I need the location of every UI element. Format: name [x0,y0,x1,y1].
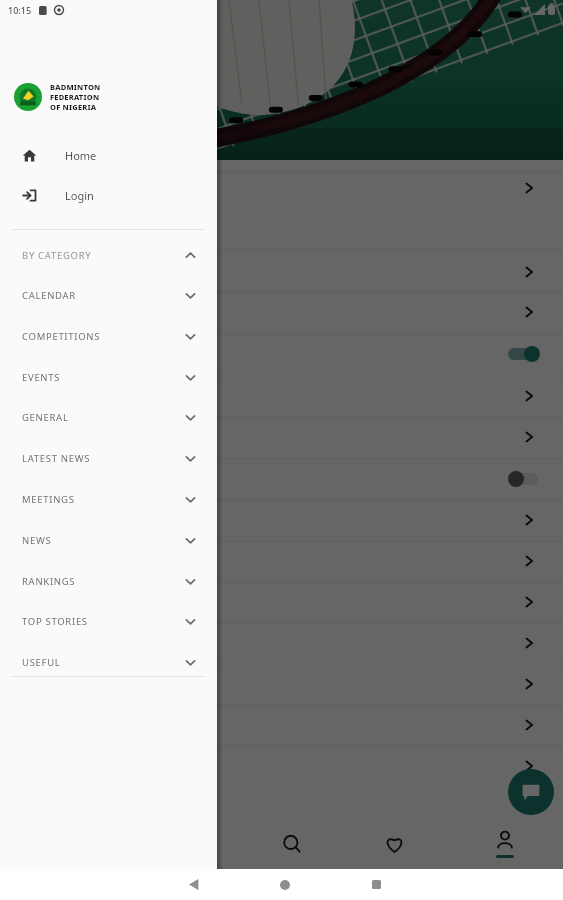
button[interactable]: Open [522,265,536,279]
button[interactable]: Open [522,759,536,773]
staticText: Login [65,188,94,203]
button[interactable]: BADMINTON [14,82,101,112]
button[interactable]: Toggle on [508,345,542,363]
button[interactable]: Profile [477,819,533,869]
button[interactable]: TOP STORIES [0,606,217,636]
button[interactable]: Open [522,636,536,650]
button[interactable]: CALENDAR [0,280,217,310]
staticText: RANKINGS [22,575,76,588]
staticText: MEETINGS [22,493,75,506]
staticText: BY CATEGORY [22,249,92,262]
staticText: CALENDAR [22,289,76,302]
button[interactable]: COMPETITIONS [0,321,217,351]
button[interactable]: GENERAL [0,402,217,432]
staticText: LATEST NEWS [22,452,91,465]
button[interactable]: Open [522,389,536,403]
button[interactable]: EVENTS [0,362,217,392]
button[interactable]: Open [522,595,536,609]
button[interactable]: Search [264,819,320,869]
button[interactable]: MEETINGS [0,484,217,514]
button[interactable]: Open [522,513,536,527]
button[interactable]: RANKINGS [0,566,217,596]
button[interactable]: USEFUL [0,647,217,677]
staticText: OF NIGERIA [50,102,97,112]
staticText: BADMINTON [50,82,101,92]
button[interactable]: LATEST NEWS [0,443,217,473]
staticText: USEFUL [22,656,61,669]
button[interactable]: Chat [508,769,554,815]
button[interactable]: Open [522,181,536,195]
staticText: NEWS [22,534,52,547]
button[interactable]: NEWS [0,525,217,555]
staticText: 10:15 [8,4,32,16]
button[interactable]: Open [522,677,536,691]
staticText: GENERAL [22,411,69,424]
staticText: FEDERATION [50,92,100,102]
button[interactable]: Login [0,180,217,211]
button[interactable]: Open [522,554,536,568]
button[interactable]: Home [267,869,303,900]
staticText: Home [65,148,97,163]
staticText: EVENTS [22,371,61,384]
button[interactable]: Favourites [366,819,422,869]
button[interactable]: BY CATEGORY [0,240,217,270]
button[interactable]: Open [522,718,536,732]
staticText: TOP STORIES [22,615,88,628]
button[interactable]: Home [0,140,217,171]
staticText: COMPETITIONS [22,330,101,343]
button[interactable]: Recents [358,869,394,900]
button[interactable]: Open [522,430,536,444]
button[interactable]: Open [522,305,536,319]
button[interactable]: Back [176,869,212,900]
button[interactable]: Toggle off [508,470,542,488]
